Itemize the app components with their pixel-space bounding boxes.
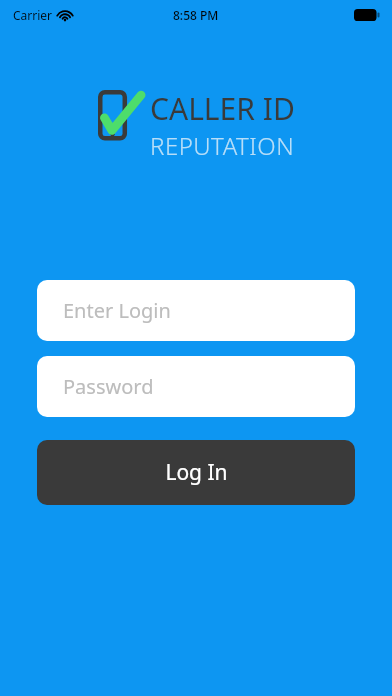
button[interactable]: Enter Login	[37, 280, 355, 341]
staticText: Password	[63, 373, 154, 400]
button[interactable]: Log In	[37, 440, 355, 505]
staticText: REPUTATION	[150, 129, 295, 162]
staticText: Log In	[165, 458, 228, 487]
staticText: 8:58 PM	[173, 7, 219, 23]
staticText: CALLER ID	[150, 88, 295, 129]
button[interactable]: Password	[37, 356, 355, 417]
staticText: Carrier	[13, 7, 53, 23]
staticText: Enter Login	[63, 297, 171, 324]
